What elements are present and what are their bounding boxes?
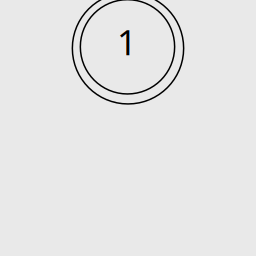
button[interactable]: 1 [72,0,184,105]
staticText: 1 [117,19,137,65]
